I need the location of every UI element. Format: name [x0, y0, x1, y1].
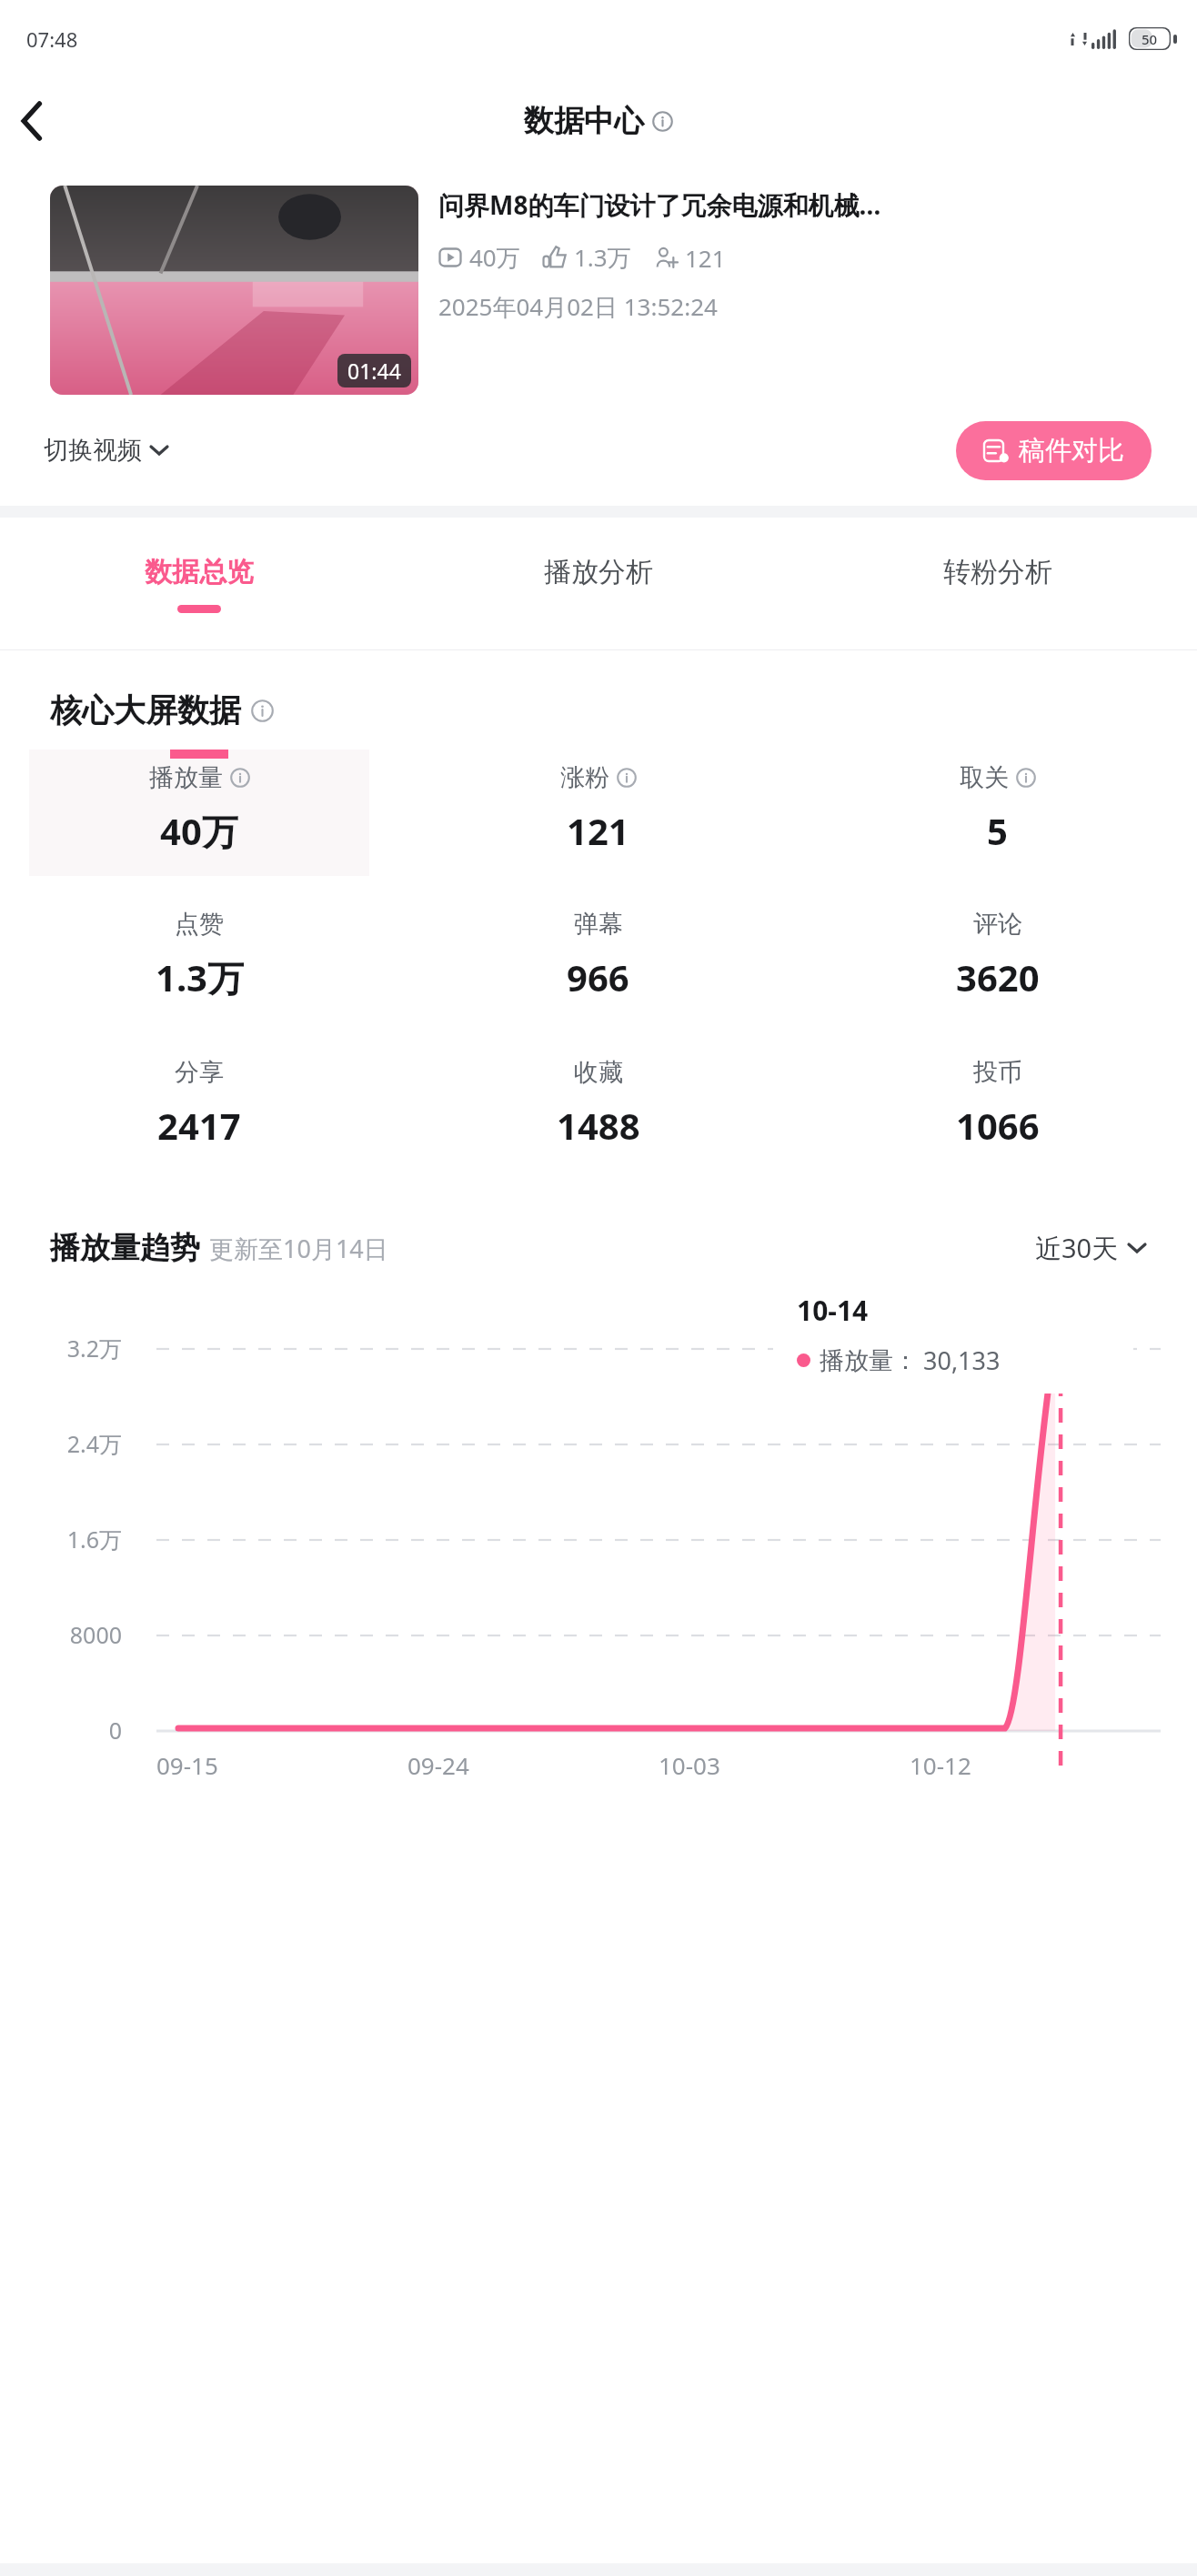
staticText: 5	[987, 806, 1008, 855]
staticText: 40万	[160, 806, 238, 856]
button[interactable]: 数据总览	[0, 518, 398, 649]
button[interactable]: 稿件对比	[956, 421, 1152, 480]
staticText: 数据中心	[524, 102, 644, 140]
staticText: 966	[567, 952, 629, 1001]
staticText: 2.4万	[66, 1428, 122, 1459]
staticText: 3620	[956, 952, 1040, 1001]
staticText: 核心大屏数据	[50, 690, 241, 730]
staticText: 3.2万	[66, 1333, 122, 1363]
button[interactable]: 取关	[827, 750, 1168, 875]
button[interactable]: 涨粉	[427, 750, 769, 875]
staticText: 收藏	[574, 1057, 623, 1088]
button[interactable]: 切换视频	[38, 429, 174, 471]
button[interactable]: 评论	[827, 896, 1168, 1021]
staticText: 2417	[157, 1101, 241, 1150]
button[interactable]: Info	[652, 111, 673, 132]
staticText: 评论	[973, 909, 1022, 940]
button[interactable]: 投币	[827, 1044, 1168, 1170]
staticText: 投币	[973, 1057, 1022, 1088]
staticText: 播放量：	[820, 1345, 918, 1376]
staticText: 转粉分析	[943, 555, 1052, 589]
button[interactable]: 收藏	[427, 1044, 769, 1170]
staticText: 取关	[960, 762, 1009, 793]
button[interactable]: 点赞	[29, 896, 369, 1022]
staticText: 50	[1142, 30, 1158, 48]
staticText: 2025年04月02日 13:52:24	[438, 290, 718, 323]
staticText: 问界M8的车门设计了冗余电源和机械…	[438, 187, 881, 222]
staticText: 数据总览	[145, 555, 254, 589]
button[interactable]: Info	[230, 768, 250, 788]
button[interactable]: Info	[251, 699, 274, 722]
staticText: 弹幕	[574, 909, 623, 940]
staticText: 8000	[69, 1619, 122, 1650]
staticText: 01:44	[347, 357, 401, 385]
staticText: 10-03	[659, 1749, 720, 1781]
button[interactable]: 播放分析	[398, 518, 798, 649]
button[interactable]: 近30天	[1030, 1224, 1152, 1272]
staticText: 1488	[557, 1101, 640, 1150]
button[interactable]: 转粉分析	[798, 518, 1197, 649]
staticText: 10-14	[797, 1292, 869, 1329]
staticText: 121	[685, 242, 726, 274]
staticText: 播放量趋势	[50, 1229, 200, 1267]
button[interactable]: 播放量	[29, 750, 369, 876]
staticText: 07:48	[26, 25, 78, 53]
staticText: 播放量	[149, 762, 223, 793]
staticText: 0	[108, 1715, 122, 1746]
staticText: 1066	[956, 1101, 1040, 1150]
button[interactable]: 弹幕	[427, 896, 769, 1021]
staticText: 更新至10月14日	[209, 1232, 388, 1265]
staticText: 涨粉	[560, 762, 609, 793]
staticText: 播放分析	[544, 555, 653, 589]
staticText: 30,133	[923, 1343, 1001, 1377]
staticText: 40万	[469, 241, 520, 274]
staticText: 切换视频	[44, 435, 142, 466]
staticText: 10-12	[910, 1749, 971, 1781]
staticText: 稿件对比	[1019, 434, 1124, 468]
button[interactable]: 分享	[29, 1044, 369, 1170]
staticText: 1.3万	[156, 952, 244, 1002]
staticText: 121	[567, 806, 629, 855]
staticText: 分享	[175, 1057, 224, 1088]
button[interactable]: Back	[0, 89, 64, 153]
staticText: 点赞	[175, 909, 224, 940]
staticText: 1.6万	[66, 1524, 122, 1555]
button[interactable]: Info	[617, 768, 637, 788]
staticText: 1.3万	[574, 241, 631, 274]
staticText: 近30天	[1035, 1230, 1119, 1266]
staticText: 09-15	[156, 1749, 218, 1781]
staticText: 09-24	[407, 1749, 469, 1781]
button[interactable]: Info	[1016, 768, 1036, 788]
button[interactable]: 01:44	[50, 186, 418, 395]
